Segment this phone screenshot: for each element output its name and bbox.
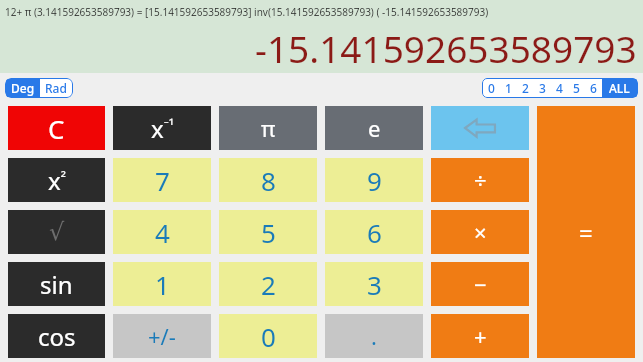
staticText: 2 xyxy=(522,80,529,96)
button[interactable]: √ xyxy=(8,210,105,254)
staticText: 8 xyxy=(261,163,276,198)
button[interactable]: . xyxy=(325,314,423,358)
button[interactable]: + xyxy=(431,314,529,358)
staticText: 3 xyxy=(539,80,546,96)
staticText: sin xyxy=(40,268,73,301)
staticText: 0 xyxy=(488,80,495,96)
staticText: 5 xyxy=(261,215,276,250)
staticText: 1 xyxy=(155,267,170,302)
staticText: 9 xyxy=(367,163,382,198)
staticText: = xyxy=(579,216,593,249)
button[interactable]: e xyxy=(325,106,423,150)
staticText: 2 xyxy=(261,267,276,302)
button[interactable]: π xyxy=(219,106,317,150)
staticText: e xyxy=(368,113,381,143)
button[interactable]: 2 xyxy=(219,262,317,306)
staticText: 6 xyxy=(367,215,382,250)
staticText: π xyxy=(261,113,276,143)
button[interactable]: 5 xyxy=(568,79,585,97)
button[interactable]: 2 xyxy=(517,79,534,97)
staticText: 3 xyxy=(367,267,382,302)
button[interactable]: 1 xyxy=(113,262,211,306)
button[interactable]: 4 xyxy=(551,79,568,97)
staticText: √ xyxy=(49,218,65,246)
staticText: +/- xyxy=(148,321,176,351)
button[interactable]: 0 xyxy=(483,79,500,97)
staticText: -15.141592653589793 xyxy=(255,23,637,73)
staticText: + xyxy=(474,321,487,351)
staticText: 12+ π (3.141592653589793) = [15.14159265… xyxy=(5,5,489,19)
staticText: C xyxy=(48,111,65,146)
button[interactable]: x² xyxy=(8,158,105,202)
button[interactable]: 1 xyxy=(500,79,517,97)
staticText: 6 xyxy=(590,80,597,96)
staticText: x⁻¹ xyxy=(151,112,174,145)
button[interactable]: − xyxy=(431,262,529,306)
staticText: . xyxy=(371,321,377,351)
button[interactable]: Backspace xyxy=(431,106,529,150)
button[interactable]: 3 xyxy=(534,79,551,97)
button[interactable]: cos xyxy=(8,314,105,358)
staticText: x² xyxy=(48,164,66,197)
button[interactable]: 7 xyxy=(113,158,211,202)
staticText: Deg xyxy=(11,80,35,96)
button[interactable]: +/- xyxy=(113,314,211,358)
button[interactable]: 8 xyxy=(219,158,317,202)
staticText: 1 xyxy=(505,80,512,96)
staticText: 4 xyxy=(556,80,563,96)
button[interactable]: Deg xyxy=(6,79,40,97)
button[interactable]: ÷ xyxy=(431,158,529,202)
staticText: cos xyxy=(38,320,76,353)
staticText: ALL xyxy=(609,80,630,96)
button[interactable]: 4 xyxy=(113,210,211,254)
button[interactable]: 5 xyxy=(219,210,317,254)
button[interactable]: 9 xyxy=(325,158,423,202)
button[interactable]: x⁻¹ xyxy=(113,106,211,150)
button[interactable]: C xyxy=(8,106,105,150)
button[interactable]: 3 xyxy=(325,262,423,306)
staticText: − xyxy=(474,269,487,299)
button[interactable]: Rad xyxy=(40,79,72,97)
button[interactable]: 6 xyxy=(325,210,423,254)
button[interactable]: 6 xyxy=(585,79,602,97)
staticText: ÷ xyxy=(474,165,487,195)
staticText: 0 xyxy=(261,319,276,354)
staticText: 4 xyxy=(155,215,170,250)
button[interactable]: ALL xyxy=(602,79,637,97)
button[interactable]: 0 xyxy=(219,314,317,358)
button[interactable]: sin xyxy=(8,262,105,306)
staticText: × xyxy=(474,217,487,247)
staticText: 5 xyxy=(573,80,580,96)
staticText: 7 xyxy=(155,163,170,198)
button[interactable]: = xyxy=(537,106,635,358)
staticText: Rad xyxy=(45,80,67,96)
button[interactable]: × xyxy=(431,210,529,254)
